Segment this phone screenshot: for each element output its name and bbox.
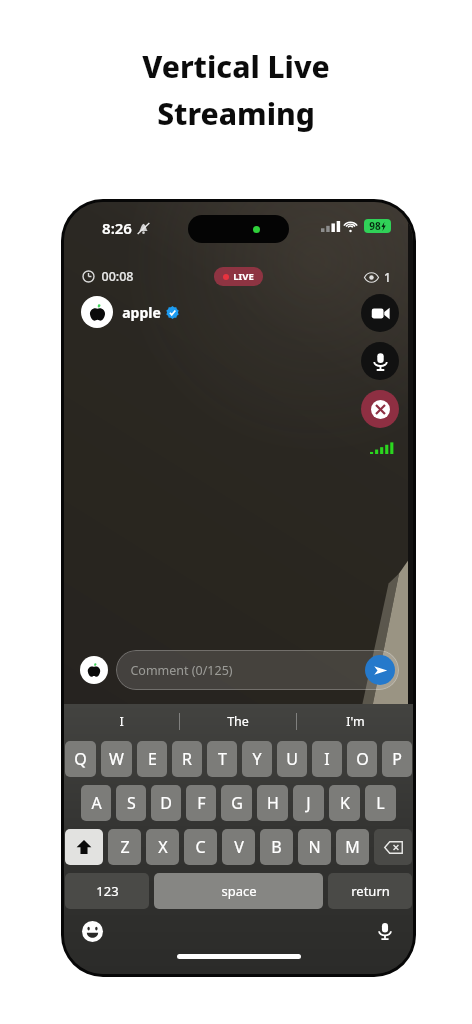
staticText: I [119, 713, 124, 730]
button[interactable]: 123 [65, 873, 149, 909]
staticText: 00:08 [101, 268, 134, 285]
staticText: G [231, 792, 243, 814]
button[interactable]: C [184, 829, 217, 865]
button[interactable]: Shift [65, 829, 103, 865]
staticText: space [221, 882, 257, 900]
staticText: I [324, 748, 330, 770]
staticText: C [195, 836, 206, 858]
button[interactable]: I [64, 704, 179, 738]
staticText: Y [252, 748, 262, 770]
button[interactable]: J [293, 785, 324, 821]
button[interactable]: P [382, 741, 412, 777]
staticText: 98 [369, 219, 381, 233]
staticText: R [182, 748, 192, 770]
button[interactable]: Comment (0/125) [116, 650, 399, 690]
staticText: return [351, 882, 390, 900]
staticText: N [308, 836, 321, 858]
staticText: The [227, 713, 249, 730]
button[interactable]: G [221, 785, 252, 821]
button[interactable]: N [298, 829, 331, 865]
button[interactable]: Send comment [365, 655, 395, 685]
button[interactable]: L [365, 785, 396, 821]
staticText: U [286, 748, 298, 770]
button[interactable]: The [180, 704, 296, 738]
button[interactable]: W [101, 741, 132, 777]
button[interactable]: Microphone [361, 342, 399, 380]
staticText: 8:26 [102, 218, 132, 238]
button[interactable]: M [336, 829, 369, 865]
button[interactable]: X [146, 829, 179, 865]
button[interactable]: F [186, 785, 216, 821]
staticText: Z [120, 836, 130, 858]
button[interactable]: apple [79, 294, 181, 330]
staticText: L [376, 792, 385, 814]
staticText: O [356, 748, 369, 770]
button[interactable] [80, 656, 108, 684]
button[interactable]: Z [108, 829, 141, 865]
staticText: F [197, 792, 206, 814]
button[interactable]: End live stream [361, 390, 399, 428]
button[interactable]: B [260, 829, 293, 865]
button[interactable]: E [137, 741, 167, 777]
button[interactable]: K [329, 785, 360, 821]
staticText: K [340, 792, 350, 814]
staticText: X [158, 836, 168, 858]
staticText: apple [122, 303, 161, 322]
staticText: W [109, 748, 124, 770]
button[interactable]: S [116, 785, 146, 821]
button[interactable]: A [81, 785, 111, 821]
staticText: J [306, 792, 311, 814]
button[interactable]: I'm [297, 704, 413, 738]
button[interactable]: space [154, 873, 323, 909]
button[interactable]: U [277, 741, 307, 777]
button[interactable]: V [222, 829, 255, 865]
button[interactable]: Dictation [374, 920, 396, 942]
staticText: Q [74, 748, 87, 770]
staticText: LIVE [233, 270, 254, 283]
button[interactable]: Emoji keyboard [81, 920, 103, 942]
button[interactable]: Q [65, 741, 96, 777]
button[interactable]: R [172, 741, 202, 777]
button[interactable]: Backspace [374, 829, 412, 865]
button[interactable]: O [347, 741, 377, 777]
staticText: 1 [384, 269, 391, 285]
staticText: Comment (0/125) [130, 662, 233, 679]
button[interactable]: Y [242, 741, 272, 777]
staticText: I'm [346, 713, 365, 730]
staticText: H [267, 792, 279, 814]
staticText: M [345, 836, 360, 858]
button[interactable]: return [328, 873, 412, 909]
staticText: P [392, 748, 402, 770]
staticText: T [218, 748, 227, 770]
button[interactable]: I [312, 741, 342, 777]
button[interactable]: H [257, 785, 288, 821]
staticText: A [91, 792, 102, 814]
staticText: S [127, 792, 136, 814]
staticText: B [271, 836, 282, 858]
button[interactable]: D [151, 785, 181, 821]
staticText: V [234, 836, 244, 858]
staticText: D [160, 792, 172, 814]
button[interactable]: LIVE [214, 267, 263, 286]
button[interactable]: T [207, 741, 237, 777]
staticText: Vertical Live [142, 46, 330, 87]
staticText: Streaming [157, 93, 315, 134]
staticText: 123 [96, 882, 119, 900]
button[interactable]: Camera [361, 294, 399, 332]
staticText: E [148, 748, 157, 770]
